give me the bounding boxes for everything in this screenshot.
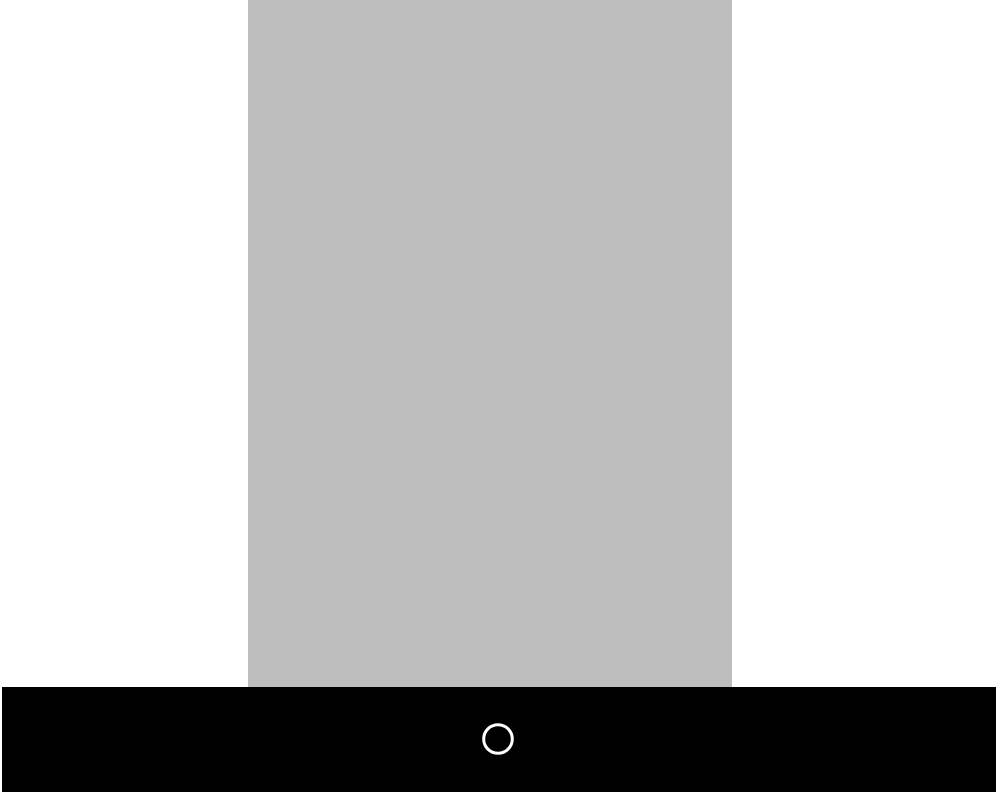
button[interactable]: Home (480, 721, 516, 757)
